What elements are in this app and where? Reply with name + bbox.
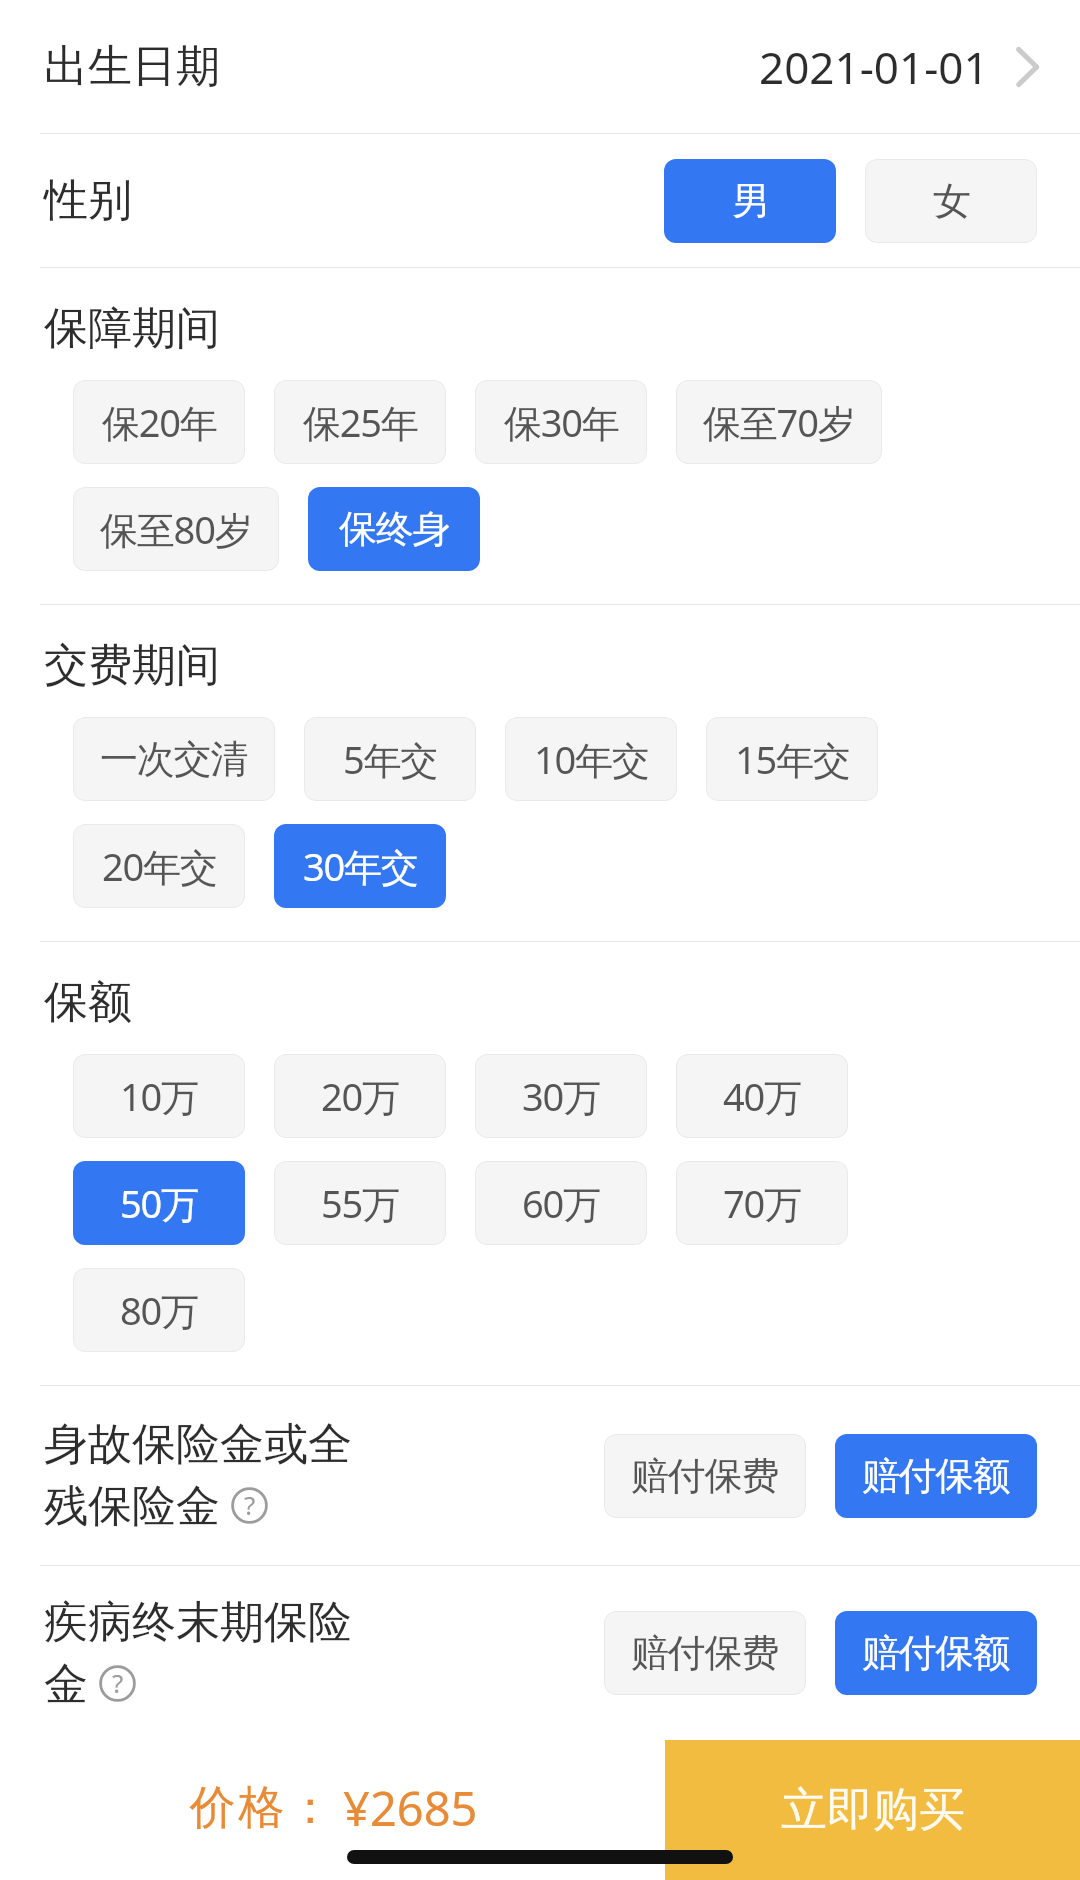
button[interactable]: 40万 — [676, 1054, 848, 1138]
button[interactable]: 说明 — [231, 1487, 268, 1524]
staticText: 赔付保额 — [862, 1452, 1010, 1500]
staticText: 交费期间 — [44, 638, 220, 693]
staticText: 疾病终末期保险 金 — [44, 1595, 352, 1712]
button[interactable]: 保至70岁 — [676, 380, 882, 464]
staticText: 男 — [732, 177, 769, 225]
staticText: 保至80岁 — [100, 503, 252, 555]
button[interactable]: 赔付保费 — [604, 1611, 806, 1695]
staticText: 立即购买 — [781, 1781, 965, 1839]
staticText: ¥2685 — [343, 1776, 478, 1840]
button[interactable]: 70万 — [676, 1161, 848, 1245]
button[interactable]: 男 — [664, 159, 836, 243]
staticText: 30年交 — [303, 840, 418, 892]
staticText: 保20年 — [102, 396, 217, 448]
staticText: 15年交 — [735, 733, 850, 785]
button[interactable]: 20年交 — [73, 824, 245, 908]
button[interactable]: 赔付保费 — [604, 1434, 806, 1518]
staticText: 10年交 — [534, 733, 649, 785]
button[interactable]: 55万 — [274, 1161, 446, 1245]
staticText: 身故保险金或全 残保险金 — [44, 1417, 352, 1534]
button[interactable]: 一次交清 — [73, 717, 275, 801]
staticText: ? — [244, 1487, 256, 1522]
staticText: 20年交 — [102, 840, 217, 892]
button[interactable]: 5年交 — [304, 717, 476, 801]
staticText: ? — [112, 1665, 124, 1700]
staticText: 60万 — [522, 1177, 600, 1229]
button[interactable]: 30万 — [475, 1054, 647, 1138]
staticText: 2021-01-01 — [759, 37, 989, 97]
button[interactable]: 出生日期 — [0, 0, 1080, 133]
button[interactable]: 15年交 — [706, 717, 878, 801]
staticText: 女 — [933, 177, 970, 225]
button[interactable]: 女 — [865, 159, 1037, 243]
staticText: 5年交 — [343, 733, 438, 785]
button[interactable]: 20万 — [274, 1054, 446, 1138]
button[interactable]: 赔付保额 — [835, 1611, 1037, 1695]
staticText: 价格： — [188, 1779, 335, 1837]
staticText: 性别 — [44, 173, 132, 228]
button[interactable]: 保至80岁 — [73, 487, 279, 571]
staticText: 保终身 — [339, 505, 450, 553]
button[interactable]: 赔付保额 — [835, 1434, 1037, 1518]
staticText: 保额 — [44, 975, 132, 1030]
staticText: 20万 — [321, 1070, 399, 1122]
staticText: 保至70岁 — [703, 396, 855, 448]
staticText: 出生日期 — [44, 39, 220, 94]
button[interactable]: 50万 — [73, 1161, 245, 1245]
staticText: 80万 — [120, 1284, 198, 1336]
staticText: 赔付保费 — [631, 1629, 779, 1677]
button[interactable]: 说明 — [99, 1665, 136, 1702]
button[interactable]: 30年交 — [274, 824, 446, 908]
staticText: 30万 — [522, 1070, 600, 1122]
button[interactable]: 60万 — [475, 1161, 647, 1245]
staticText: 赔付保额 — [862, 1629, 1010, 1677]
button[interactable]: 保终身 — [308, 487, 480, 571]
button[interactable]: 80万 — [73, 1268, 245, 1352]
button[interactable]: 保30年 — [475, 380, 647, 464]
staticText: 55万 — [321, 1177, 399, 1229]
staticText: 一次交清 — [100, 735, 248, 783]
button[interactable]: 保25年 — [274, 380, 446, 464]
staticText: 70万 — [723, 1177, 801, 1229]
staticText: 保障期间 — [44, 301, 220, 356]
staticText: 保30年 — [504, 396, 619, 448]
staticText: 40万 — [723, 1070, 801, 1122]
staticText: 保25年 — [303, 396, 418, 448]
staticText: 赔付保费 — [631, 1452, 779, 1500]
button[interactable]: 立即购买 — [665, 1740, 1080, 1880]
button[interactable]: 10年交 — [505, 717, 677, 801]
staticText: 50万 — [120, 1177, 198, 1229]
button[interactable]: 10万 — [73, 1054, 245, 1138]
staticText: 10万 — [120, 1070, 198, 1122]
button[interactable]: 保20年 — [73, 380, 245, 464]
